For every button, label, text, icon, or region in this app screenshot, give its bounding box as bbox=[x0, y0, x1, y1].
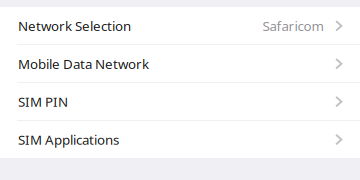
button[interactable]: SIM Applications bbox=[0, 121, 360, 158]
staticText: Safaricom bbox=[262, 17, 323, 35]
staticText: SIM PIN bbox=[18, 93, 68, 110]
button[interactable]: SIM PIN bbox=[0, 83, 360, 120]
staticText: Mobile Data Network bbox=[18, 55, 149, 73]
staticText: SIM Applications bbox=[18, 131, 119, 148]
staticText: Network Selection bbox=[18, 17, 131, 35]
button[interactable]: Network Selection bbox=[0, 7, 360, 44]
button[interactable]: Mobile Data Network bbox=[0, 45, 360, 82]
